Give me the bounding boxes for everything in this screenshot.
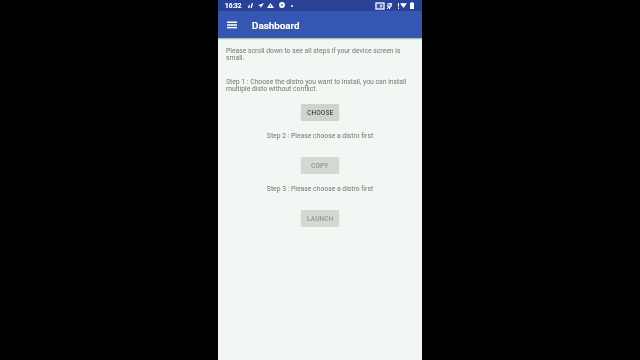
staticText: LAUNCH: [307, 215, 334, 223]
button[interactable]: CHOOSE: [301, 104, 339, 121]
button[interactable]: LAUNCH: [301, 210, 339, 227]
staticText: 16:32: [225, 2, 242, 10]
staticText: Please scroll down to see all steps if y…: [226, 47, 414, 62]
staticText: COPY: [311, 162, 329, 170]
staticText: Dashboard: [252, 20, 300, 31]
button[interactable]: COPY: [301, 157, 339, 174]
staticText: Step 3 : Please choose a distro first: [218, 185, 422, 193]
button[interactable]: Open navigation drawer: [221, 13, 242, 35]
staticText: Step 2 : Please choose a distro first: [218, 132, 422, 140]
staticText: CHOOSE: [307, 109, 334, 117]
staticText: Step 1 : Choose the distro you want to i…: [226, 78, 414, 93]
